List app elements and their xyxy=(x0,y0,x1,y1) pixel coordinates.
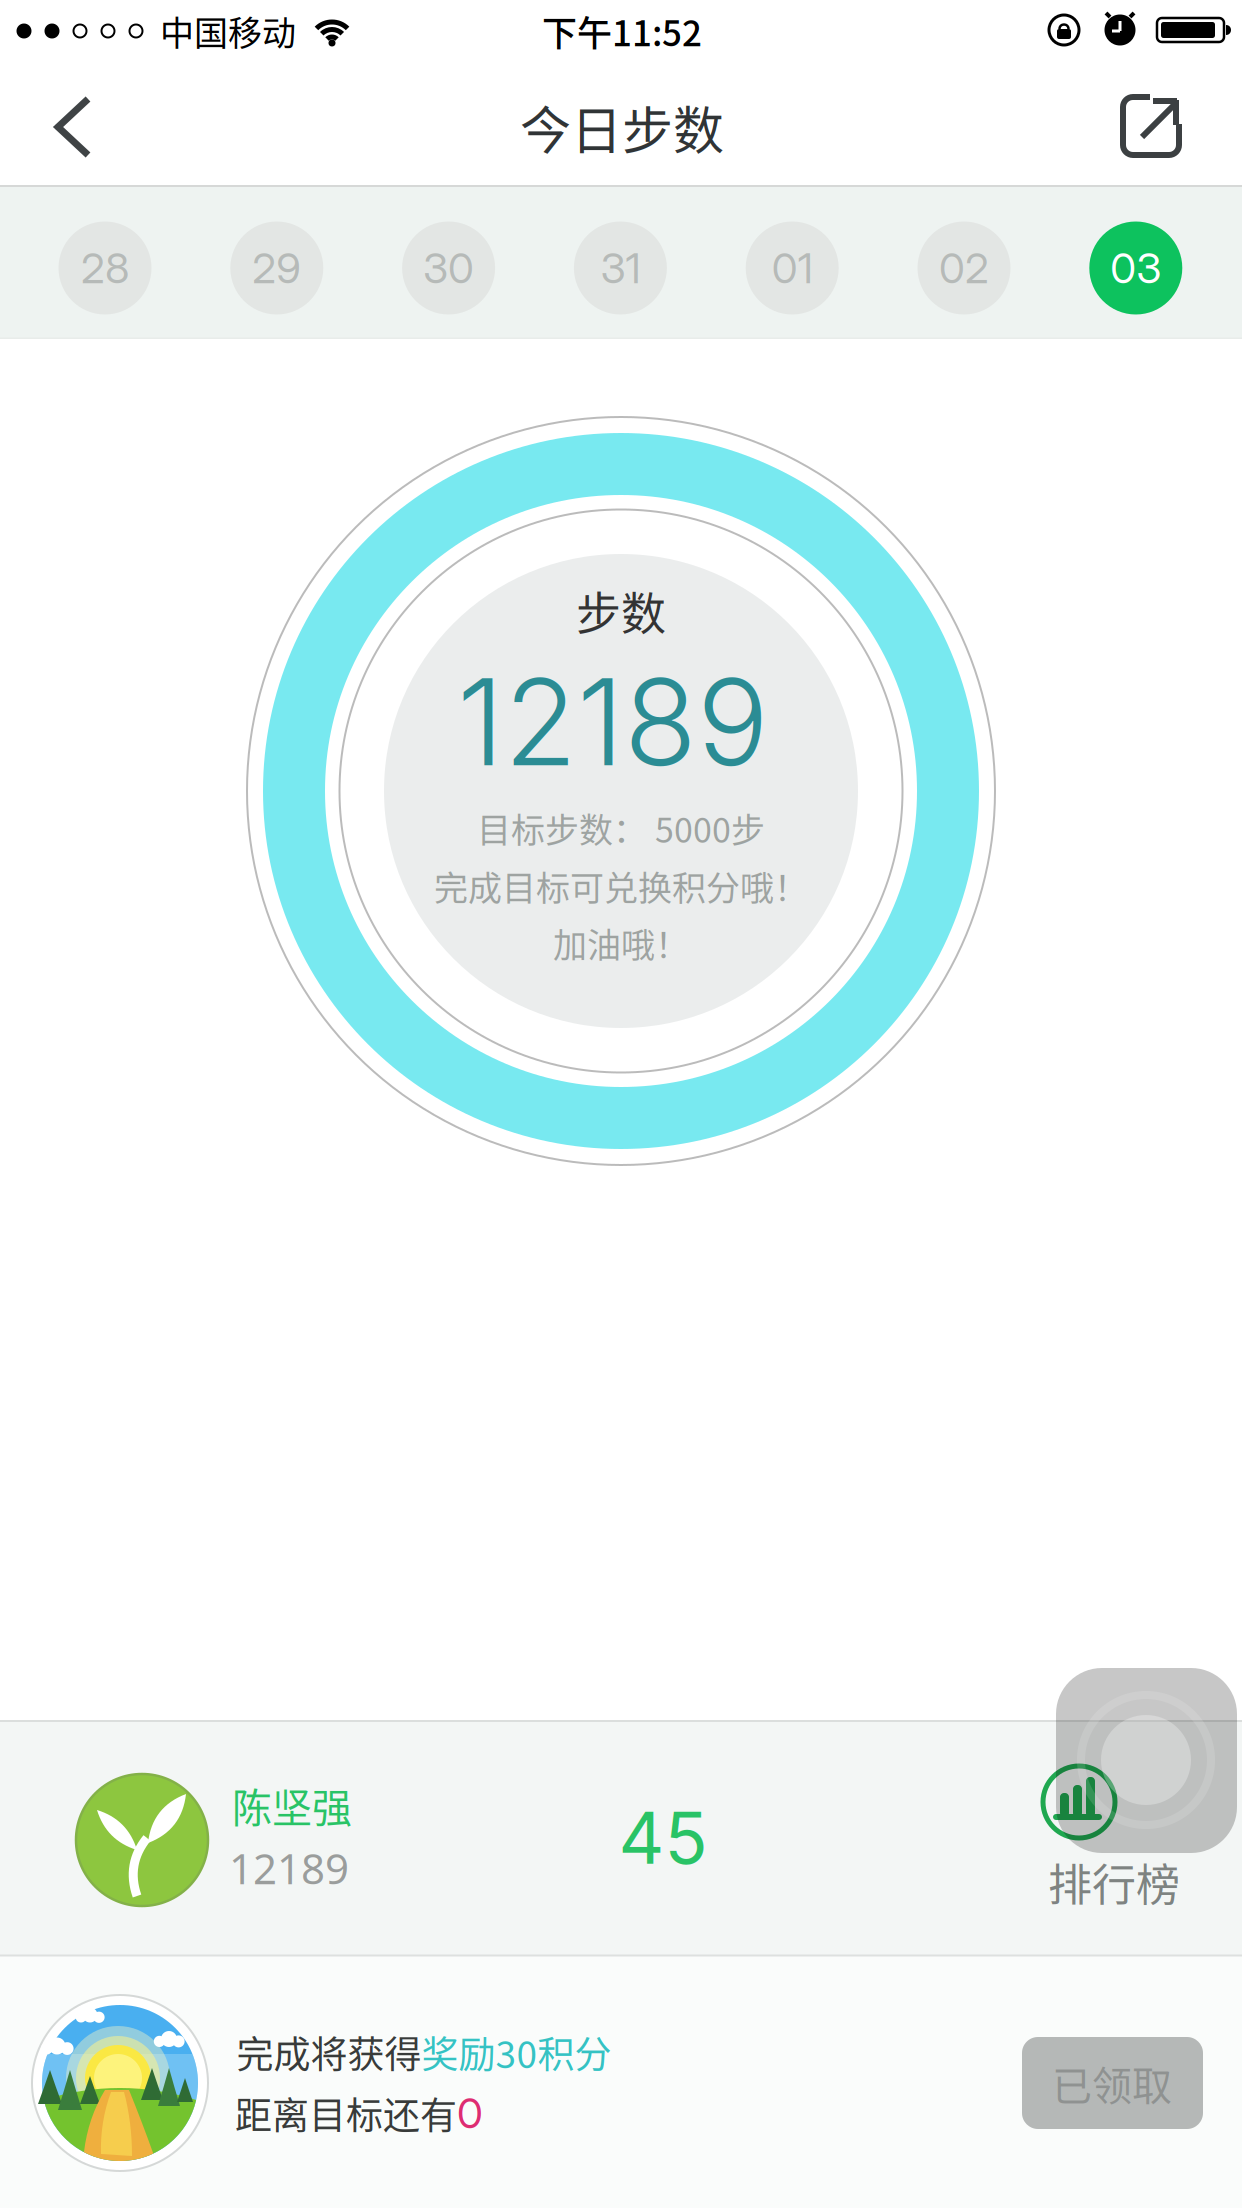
staticText: 12189 xyxy=(457,650,769,794)
staticText: 45 xyxy=(618,1795,707,1881)
staticText: 目标步数： 5000步 xyxy=(477,803,765,853)
staticText: 加油哦！ xyxy=(553,918,689,968)
staticText: 已领取 xyxy=(1052,2054,1172,2112)
staticText: 距离目标还有 xyxy=(235,2086,457,2140)
staticText: 今日步数 xyxy=(520,90,724,164)
staticText: 29 xyxy=(252,243,301,293)
staticText: 完成将获得 xyxy=(236,2025,421,2079)
staticText: 0 xyxy=(457,2088,483,2138)
staticText: 完成目标可兑换积分哦！ xyxy=(434,861,808,911)
staticText: 下午11:52 xyxy=(542,6,702,56)
staticText: 02 xyxy=(939,243,989,293)
staticText: 陈坚强 xyxy=(232,1776,352,1834)
staticText: 步数 xyxy=(576,578,666,644)
staticText: 30 xyxy=(423,243,474,293)
staticText: 31 xyxy=(600,243,640,293)
staticText: 12189 xyxy=(229,1839,349,1897)
staticText: 28 xyxy=(81,243,129,293)
staticText: 中国移动 xyxy=(160,6,296,56)
staticText: 01 xyxy=(772,243,813,293)
staticText: 排行榜 xyxy=(1048,1850,1180,1914)
staticText: 奖励30积分 xyxy=(421,2025,611,2079)
staticText: 03 xyxy=(1110,243,1161,293)
